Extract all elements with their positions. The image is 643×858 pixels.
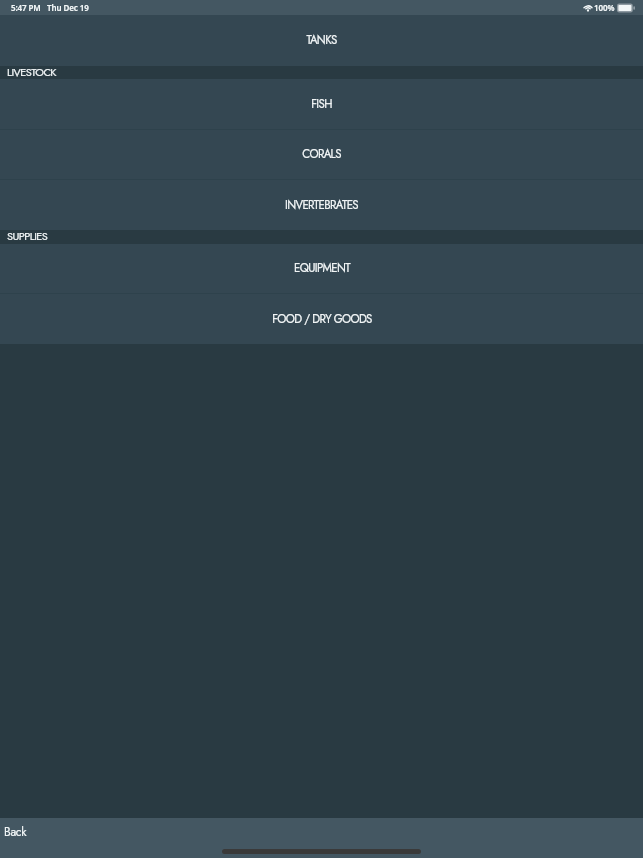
other: Battery full [617,3,635,13]
button[interactable]: TANKS [0,15,643,66]
staticText: Thu Dec 19 [47,2,89,13]
button[interactable]: Back [4,818,27,844]
staticText: Back [4,823,27,840]
staticText: TANKS [306,32,337,49]
staticText: INVERTEBRATES [285,197,358,214]
staticText: CORALS [302,146,341,163]
staticText: 100% [594,2,615,13]
button[interactable]: CORALS [0,130,643,179]
other: Wi-Fi [583,0,593,15]
staticText: FISH [311,96,332,113]
button[interactable]: INVERTEBRATES [0,180,643,230]
staticText: 5:47 PM [11,2,41,13]
staticText: EQUIPMENT [294,260,350,277]
button[interactable]: EQUIPMENT [0,244,643,293]
staticText: FOOD / DRY GOODS [272,311,372,328]
staticText: SUPPLIES [7,228,48,242]
button[interactable]: FISH [0,79,643,129]
button[interactable]: FOOD / DRY GOODS [0,294,643,344]
staticText: LIVESTOCK [7,64,57,77]
